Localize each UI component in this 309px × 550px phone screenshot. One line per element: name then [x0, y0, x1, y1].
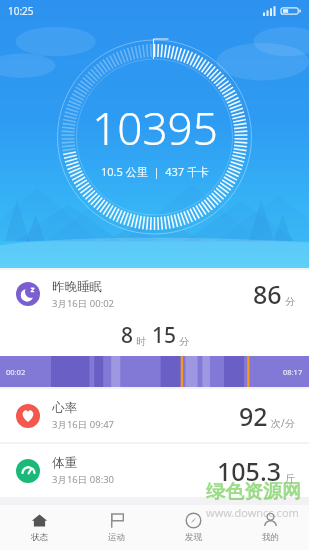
staticText: 体重 — [52, 455, 77, 471]
staticText: 3月16日 00:02 — [52, 297, 115, 310]
button[interactable]: 运动 — [78, 505, 155, 550]
staticText: 斤 — [285, 472, 295, 485]
staticText: 发现 — [185, 532, 202, 543]
staticText: 状态 — [31, 532, 48, 543]
staticText: 10:25 — [8, 4, 34, 18]
button[interactable]: 心率 — [0, 389, 309, 442]
staticText: 00:02 — [6, 367, 26, 377]
staticText: 时 — [136, 335, 146, 348]
button[interactable]: 我的 — [232, 505, 309, 550]
staticText: 105.3 — [217, 454, 282, 488]
staticText: 3月16日 09:47 — [52, 418, 115, 431]
staticText: 我的 — [262, 532, 279, 543]
staticText: 3月16日 08:30 — [52, 473, 115, 486]
staticText: 92 — [239, 399, 268, 433]
staticText: 8 — [121, 321, 134, 350]
staticText: 分 — [179, 335, 189, 348]
button[interactable]: 状态 — [0, 505, 78, 550]
staticText: 分 — [285, 295, 295, 308]
staticText: 次/分 — [271, 416, 295, 430]
staticText: 运动 — [108, 532, 125, 543]
button[interactable]: 体重 — [0, 444, 309, 497]
button[interactable]: 昨晚睡眠 — [0, 270, 309, 387]
staticText: 08:17 — [283, 367, 303, 377]
staticText: www.downcc.com — [206, 505, 299, 520]
staticText: 10.5 公里 | 437 千卡 — [101, 164, 209, 179]
staticText: 15 — [152, 321, 177, 350]
staticText: 绿色资源网 — [206, 480, 301, 504]
staticText: 心率 — [52, 400, 77, 416]
staticText: 昨晚睡眠 — [52, 279, 102, 295]
staticText: 10395 — [92, 98, 218, 158]
staticText: 86 — [253, 277, 282, 311]
button[interactable]: 发现 — [155, 505, 232, 550]
